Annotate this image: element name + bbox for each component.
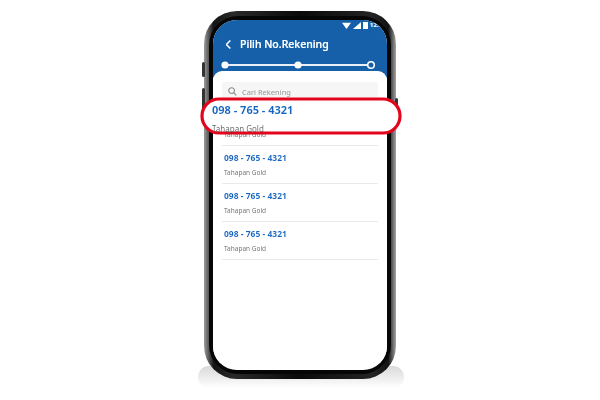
staticText: Tahapan Gold (224, 168, 267, 177)
staticText: 12:3 (370, 21, 382, 29)
staticText: 098 - 765 - 4321 (224, 114, 287, 126)
staticText: 098 - 765 - 4321 (224, 228, 287, 240)
staticText: Tahapan Gold (224, 206, 267, 215)
button[interactable]: Cari Rekening (222, 82, 378, 101)
button[interactable]: 098 - 765 - 4321 (213, 222, 387, 259)
button[interactable]: 098 - 765 - 4321 (213, 146, 387, 183)
staticText: Tahapan Gold (224, 130, 267, 139)
staticText: Tahapan Gold (224, 244, 267, 253)
button[interactable]: 098 - 765 - 4321 (213, 184, 387, 221)
staticText: 098 - 765 - 4321 (212, 102, 294, 117)
staticText: 098 - 765 - 4321 (224, 190, 287, 202)
staticText: Cari Rekening (242, 87, 291, 97)
button[interactable]: 098 - 765 - 4321 (212, 102, 362, 134)
staticText: 098 - 765 - 4321 (224, 152, 287, 164)
button[interactable]: Back (219, 35, 237, 53)
staticText: Tahapan Gold (212, 123, 264, 134)
button[interactable]: 098 - 765 - 4321 (213, 108, 387, 145)
staticText: Pilih No.Rekening (240, 37, 329, 51)
